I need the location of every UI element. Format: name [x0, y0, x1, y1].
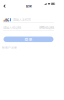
staticText: 登录: [24, 36, 32, 42]
button[interactable]: 获取验证码: [39, 25, 54, 30]
staticText: 请输入验证码: [3, 25, 21, 30]
staticText: 请输入手机号: [13, 17, 31, 22]
staticText: 新用户注册: [2, 46, 17, 50]
staticText: 获取验证码: [39, 25, 54, 30]
button[interactable]: 新用户注册: [2, 46, 17, 50]
button[interactable]: +86: [3, 17, 9, 23]
staticText: +86: [3, 17, 9, 23]
button[interactable]: 登录: [3, 36, 53, 42]
staticText: 登录: [25, 4, 31, 9]
button[interactable]: Back: [1, 3, 8, 10]
